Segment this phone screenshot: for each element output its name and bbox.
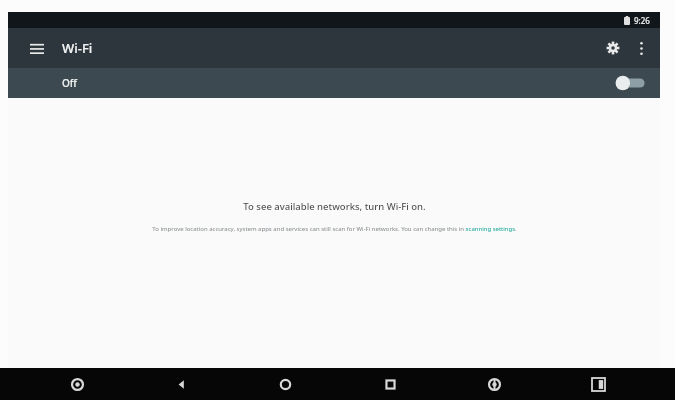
button[interactable]: Recent apps xyxy=(363,368,417,400)
staticText: Off xyxy=(62,76,77,90)
staticText: Wi-Fi xyxy=(62,39,93,57)
button[interactable]: Screenshot xyxy=(571,368,625,400)
staticText: To see available networks, turn Wi-Fi on… xyxy=(243,200,426,213)
button[interactable]: Open navigation drawer xyxy=(22,33,52,63)
staticText: To improve location accuracy, system app… xyxy=(152,225,517,233)
button[interactable]: Wi-Fi toggle, off xyxy=(614,72,648,94)
button[interactable]: Volume up xyxy=(467,368,521,400)
button[interactable]: Off xyxy=(8,68,660,98)
button[interactable]: Settings xyxy=(598,33,628,63)
staticText: 9:26 xyxy=(634,15,650,26)
button[interactable]: Back xyxy=(154,368,208,400)
button[interactable]: Volume down xyxy=(50,368,104,400)
button[interactable]: Home xyxy=(258,368,312,400)
button[interactable]: More options xyxy=(628,35,654,61)
